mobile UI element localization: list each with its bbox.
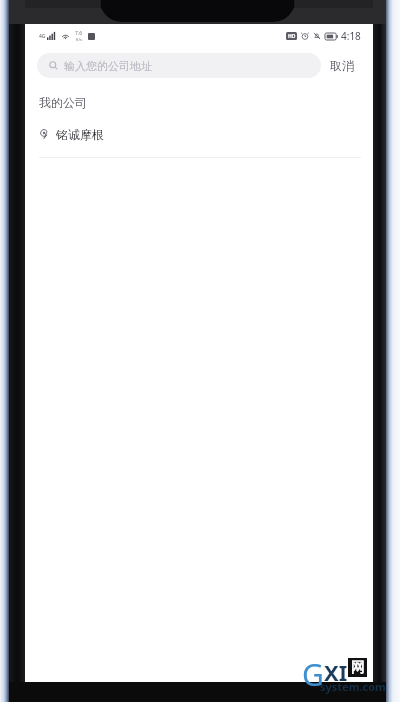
button[interactable]: 铭诚摩根 [25,122,373,158]
staticText: XI [324,657,348,687]
staticText: 4G [39,33,46,40]
other: Alarm [301,32,309,40]
staticText: 铭诚摩根 [56,127,104,142]
staticText: 4:18 [341,29,361,43]
staticText: 输入您的公司地址 [64,59,152,73]
other: Mute [313,32,321,40]
staticText: 我的公司 [39,95,87,110]
staticText: 网 [351,659,365,677]
staticText: G [302,654,324,695]
staticText: K/s [76,37,82,42]
staticText: HD [288,33,296,40]
staticText: system.com [320,679,386,694]
staticText: 7.6 [75,30,83,37]
staticText: 取消 [330,58,354,73]
button[interactable]: 取消 [321,52,363,79]
button[interactable]: 输入您的公司地址 [37,53,321,78]
